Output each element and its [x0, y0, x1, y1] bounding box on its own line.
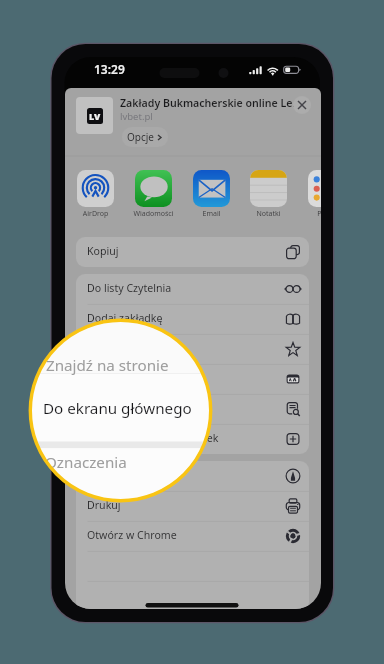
button[interactable]: Kopiuj — [76, 237, 309, 267]
button[interactable]: LV — [65, 88, 321, 156]
button[interactable]: Przyp — [301, 170, 321, 218]
button[interactable]: Oznaczenia — [76, 461, 309, 491]
button[interactable]: Oznaczenia — [76, 394, 309, 424]
staticText: Wiadomości — [128, 209, 179, 219]
button[interactable]: Close — [293, 96, 311, 114]
staticText: Kopiuj — [87, 244, 119, 258]
staticText: Dodaj do Szybkich notatek — [87, 431, 219, 445]
staticText: Znajdź na stronie — [46, 355, 169, 376]
staticText: Dodaj zakładkę — [87, 311, 163, 325]
staticText: 13:29 — [94, 61, 125, 77]
staticText: AirDrop — [70, 209, 121, 219]
button[interactable]: Drukuj — [76, 491, 309, 521]
button[interactable]: Wiadomości — [128, 170, 179, 218]
staticText: Oznaczenia — [87, 401, 145, 415]
button[interactable]: Otwórz w Chrome — [76, 521, 309, 551]
staticText: Do ekranu głównego — [43, 398, 192, 419]
staticText: Do listy Czytelnia — [87, 281, 172, 295]
staticText: Zakłady Bukmacherskie online Le... — [120, 96, 320, 110]
staticText: Notatki — [243, 209, 294, 219]
staticText: LV — [89, 110, 101, 122]
staticText: lvbet.pl — [120, 110, 153, 123]
button[interactable] — [76, 581, 309, 609]
button[interactable]: Do listy Czytelnia — [76, 274, 309, 304]
button[interactable]: Do ekranu głównego — [76, 364, 309, 394]
button[interactable]: Email — [186, 170, 237, 218]
staticText: Przyp — [301, 209, 321, 219]
button[interactable]: Dodaj do Szybkich notatek — [76, 424, 309, 454]
button[interactable]: AirDrop — [70, 170, 121, 218]
staticText: Opcje — [127, 130, 154, 144]
button[interactable]: Notatki — [243, 170, 294, 218]
staticText: Oznaczenia — [45, 452, 127, 473]
staticText: Drukuj — [87, 498, 121, 512]
staticText: Otwórz w Chrome — [87, 528, 177, 542]
button[interactable]: Dodaj zakładkę — [76, 304, 309, 334]
button[interactable]: Znajdź na stronie — [76, 334, 309, 364]
staticText: Do ekranu głównego — [87, 371, 191, 385]
button[interactable]: Opcje — [122, 127, 168, 147]
staticText: Email — [186, 209, 237, 219]
